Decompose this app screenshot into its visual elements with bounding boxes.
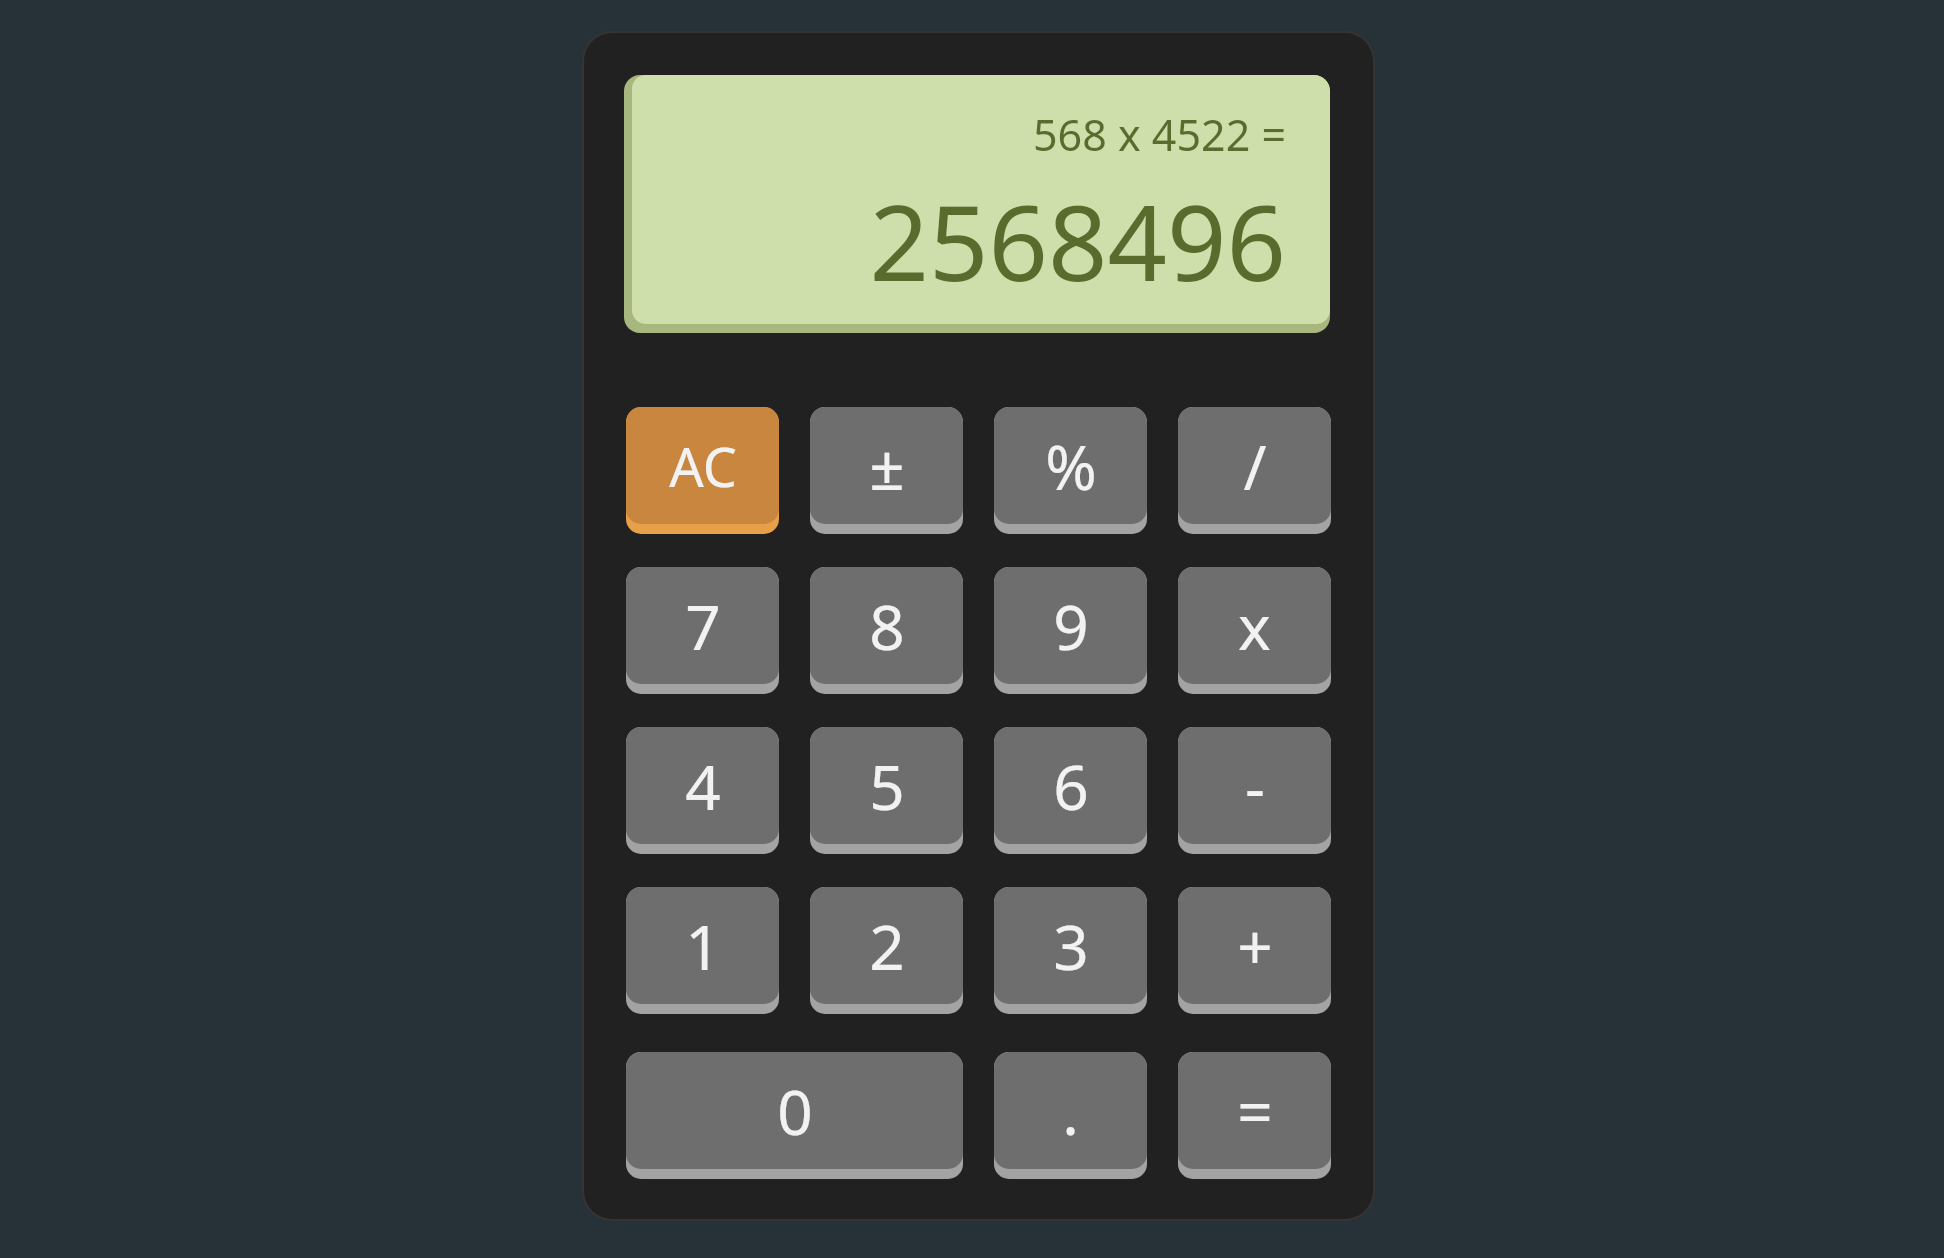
staticText: 1 xyxy=(685,904,721,988)
button[interactable]: Divide xyxy=(1178,407,1331,534)
staticText: x xyxy=(1238,584,1271,668)
button[interactable]: 8 xyxy=(810,567,963,694)
button[interactable]: 7 xyxy=(626,567,779,694)
button[interactable]: Minus xyxy=(1178,727,1331,854)
button[interactable]: 4 xyxy=(626,727,779,854)
button[interactable]: Decimal point xyxy=(994,1052,1147,1179)
staticText: 568 x 4522 = xyxy=(1032,105,1286,164)
staticText: 2 xyxy=(869,904,905,988)
button[interactable]: Toggle sign xyxy=(810,407,963,534)
button[interactable]: 3 xyxy=(994,887,1147,1014)
staticText: 8 xyxy=(869,584,905,668)
button[interactable]: 9 xyxy=(994,567,1147,694)
staticText: + xyxy=(1237,904,1273,988)
staticText: 2568496 xyxy=(869,170,1286,312)
button[interactable]: 1 xyxy=(626,887,779,1014)
staticText: 3 xyxy=(1053,904,1089,988)
button[interactable]: 0 xyxy=(626,1052,963,1179)
staticText: 7 xyxy=(685,584,721,668)
staticText: - xyxy=(1245,744,1265,828)
staticText: 4 xyxy=(685,744,721,828)
button[interactable]: 5 xyxy=(810,727,963,854)
staticText: 6 xyxy=(1053,744,1089,828)
button[interactable]: 6 xyxy=(994,727,1147,854)
button[interactable]: All clear xyxy=(626,407,779,534)
staticText: 0 xyxy=(777,1069,813,1153)
button[interactable]: Equals xyxy=(1178,1052,1331,1179)
staticText: . xyxy=(1062,1069,1079,1153)
staticText: 9 xyxy=(1053,584,1089,668)
button[interactable]: Multiply xyxy=(1178,567,1331,694)
button[interactable]: Plus xyxy=(1178,887,1331,1014)
staticText: ± xyxy=(869,424,905,508)
staticText: % xyxy=(1045,424,1097,508)
staticText: AC xyxy=(669,429,737,503)
staticText: 5 xyxy=(869,744,905,828)
staticText: = xyxy=(1237,1069,1273,1153)
staticText: / xyxy=(1243,424,1267,508)
button[interactable]: 2 xyxy=(810,887,963,1014)
button[interactable]: Percent xyxy=(994,407,1147,534)
